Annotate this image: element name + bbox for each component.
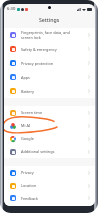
- button[interactable]: Fingerprints, face data, and: [4, 28, 95, 42]
- button[interactable]: Google: [4, 132, 95, 145]
- staticText: screen lock: [21, 35, 41, 40]
- button[interactable]: Privacy: [4, 166, 95, 179]
- button[interactable]: Additional settings: [4, 145, 95, 158]
- button[interactable]: Mi AI: [4, 119, 95, 132]
- button[interactable]: Apps: [4, 70, 95, 84]
- staticText: Location: [21, 183, 37, 188]
- staticText: Fingerprints, face data, and: [21, 30, 70, 35]
- staticText: Feedback: [21, 196, 38, 201]
- staticText: Apps: [21, 75, 30, 80]
- button[interactable]: Location: [4, 179, 95, 192]
- button[interactable]: Battery: [4, 84, 95, 98]
- button[interactable]: Safety & emergency: [4, 42, 95, 56]
- staticText: Battery: [21, 89, 34, 94]
- staticText: Settings: [39, 16, 60, 23]
- staticText: Privacy: [21, 170, 34, 175]
- button[interactable]: Feedback: [4, 192, 95, 204]
- staticText: Google: [21, 136, 34, 141]
- staticText: Safety & emergency: [21, 47, 57, 52]
- staticText: 6:30: [7, 6, 16, 12]
- button[interactable]: Privacy protection: [4, 56, 95, 70]
- staticText: Additional settings: [21, 149, 55, 154]
- staticText: Screen time: [21, 110, 43, 115]
- button[interactable]: Screen time: [4, 106, 95, 119]
- staticText: Privacy protection: [21, 61, 54, 66]
- staticText: Mi AI: [21, 123, 31, 128]
